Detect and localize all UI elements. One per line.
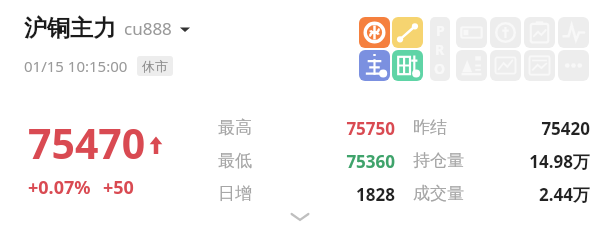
- staticText: +50: [103, 175, 134, 200]
- button[interactable]: Tool: [392, 50, 423, 81]
- staticText: 2.44万: [450, 183, 590, 206]
- staticText: 沪铜主力: [24, 14, 116, 43]
- button[interactable]: Expand: [285, 210, 315, 226]
- staticText: O: [434, 59, 446, 78]
- button[interactable]: Card: [456, 17, 487, 48]
- button[interactable]: Bar chart: [456, 50, 487, 81]
- staticText: cu888: [124, 17, 172, 40]
- staticText: 持仓量: [413, 150, 464, 171]
- staticText: +0.07%: [28, 175, 91, 200]
- button[interactable]: 沪铜主力: [24, 14, 191, 43]
- staticText: R: [435, 40, 445, 59]
- staticText: 最高: [218, 117, 252, 138]
- button[interactable]: More: [558, 50, 589, 81]
- staticText: 01/15 10:15:00: [24, 56, 128, 76]
- button[interactable]: Tool: [392, 17, 423, 48]
- button[interactable]: Tool: [359, 17, 390, 48]
- button[interactable]: Tool: [359, 50, 390, 81]
- staticText: 14.98万: [450, 150, 590, 173]
- staticText: P: [436, 21, 445, 40]
- staticText: 最低: [218, 150, 252, 171]
- button[interactable]: Fund: [490, 17, 521, 48]
- staticText: 休市: [142, 58, 168, 74]
- staticText: 75420: [450, 117, 590, 140]
- staticText: 昨结: [413, 117, 447, 138]
- button[interactable]: PRO: [430, 17, 450, 81]
- staticText: 75750: [255, 117, 395, 140]
- staticText: 成交量: [413, 183, 464, 204]
- staticText: 75470: [28, 115, 146, 171]
- button[interactable]: Report: [524, 17, 555, 48]
- button[interactable]: Note: [524, 50, 555, 81]
- button[interactable]: Trend: [490, 50, 521, 81]
- staticText: 日增: [218, 183, 252, 204]
- button[interactable]: Pulse: [558, 17, 589, 48]
- staticText: 75360: [255, 150, 395, 173]
- staticText: 1828: [255, 183, 395, 206]
